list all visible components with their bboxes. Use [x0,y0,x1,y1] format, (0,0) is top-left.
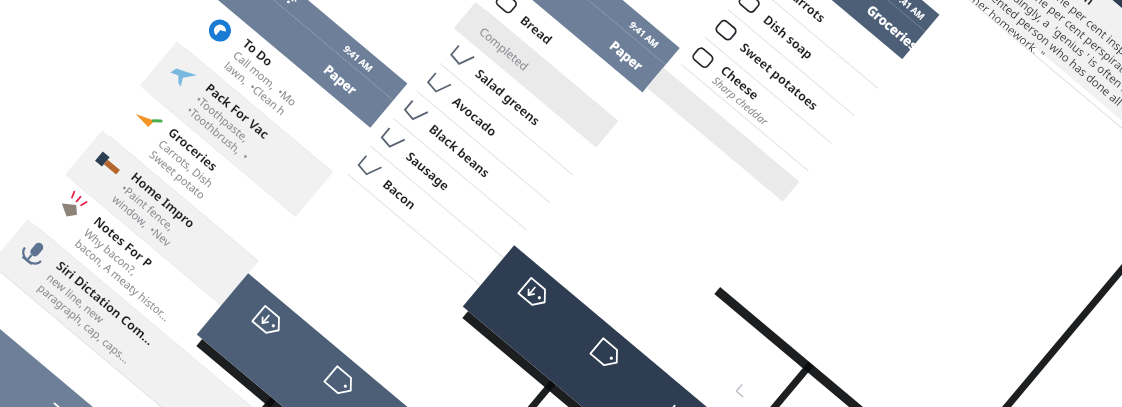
button[interactable]: Notes app screenshot showcase [0,0,1122,407]
